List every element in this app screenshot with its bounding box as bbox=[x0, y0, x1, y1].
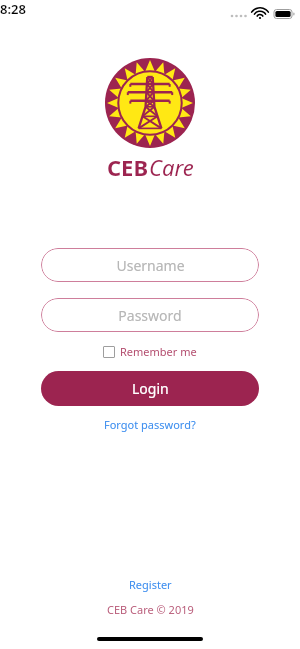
staticText: Login bbox=[132, 379, 169, 398]
button[interactable]: Register bbox=[123, 575, 178, 594]
staticText: 8:28 bbox=[0, 0, 26, 18]
button[interactable]: Password bbox=[41, 298, 259, 332]
staticText: Care bbox=[149, 152, 194, 182]
button[interactable]: Login bbox=[41, 371, 259, 406]
staticText: Password bbox=[118, 306, 182, 325]
staticText: CEB Care © 2019 bbox=[107, 602, 194, 617]
staticText: Forgot password? bbox=[104, 417, 196, 432]
button[interactable]: Remember me bbox=[101, 342, 199, 361]
other: CEB Care logo bbox=[105, 58, 195, 148]
staticText: Register bbox=[129, 577, 172, 592]
staticText: Username bbox=[116, 256, 185, 275]
staticText: Remember me bbox=[120, 344, 197, 359]
button[interactable]: Username bbox=[41, 248, 259, 282]
staticText: CEB bbox=[107, 152, 149, 182]
button[interactable]: Forgot password? bbox=[100, 415, 200, 434]
